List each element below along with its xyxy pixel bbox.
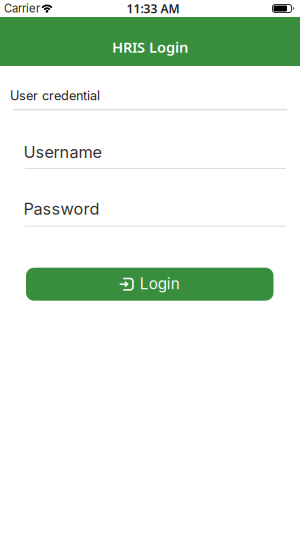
button[interactable]: Login: [26, 268, 273, 301]
textField[interactable]: Password: [23, 199, 300, 219]
staticText: Login: [140, 274, 180, 293]
staticText: User credential: [10, 88, 100, 103]
staticText: Carrier: [4, 2, 40, 15]
staticText: HRIS Login: [112, 37, 188, 57]
textField[interactable]: Username: [23, 142, 300, 162]
staticText: 11:33 AM: [126, 0, 179, 16]
staticText: Password: [23, 199, 99, 219]
staticText: Username: [23, 142, 101, 162]
